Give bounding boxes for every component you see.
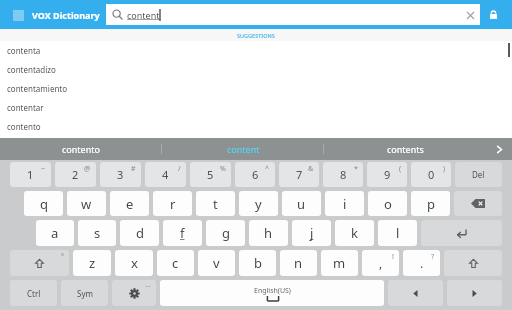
button[interactable]: e: [110, 191, 149, 216]
button[interactable]: d: [120, 220, 159, 246]
button[interactable]: v: [198, 250, 235, 276]
button[interactable]: t: [196, 191, 235, 216]
button[interactable]: contentamiento: [0, 79, 512, 98]
staticText: contentamiento: [7, 83, 68, 94]
button[interactable]: 5: [190, 162, 231, 187]
button[interactable]: .: [403, 250, 440, 276]
button[interactable]: x: [115, 250, 153, 276]
button[interactable]: ···: [112, 280, 156, 306]
button[interactable]: °: [10, 250, 69, 276]
button[interactable]: 4: [145, 162, 186, 187]
button[interactable]: Sym: [61, 280, 108, 306]
staticText: contento: [62, 143, 100, 155]
button[interactable]: b: [239, 250, 276, 276]
button[interactable]: 2: [55, 162, 96, 187]
button[interactable]: n: [280, 250, 317, 276]
button[interactable]: i: [325, 191, 364, 216]
staticText: u: [297, 195, 306, 213]
button[interactable]: Del: [455, 162, 502, 187]
staticText: y: [255, 195, 262, 213]
button[interactable]: s: [78, 220, 116, 246]
staticText: contenta: [7, 45, 41, 56]
button[interactable]: y: [239, 191, 278, 216]
staticText: q: [40, 195, 48, 213]
button[interactable]: z: [73, 250, 111, 276]
button[interactable]: p: [411, 191, 450, 216]
button[interactable]: Ctrl: [10, 280, 57, 306]
button[interactable]: [447, 280, 502, 306]
staticText: ^: [265, 164, 270, 174]
button[interactable]: 7: [279, 162, 319, 187]
button[interactable]: 6: [235, 162, 275, 187]
button[interactable]: g: [206, 220, 245, 246]
staticText: contento: [7, 121, 41, 132]
staticText: ···: [145, 282, 151, 292]
staticText: x: [131, 254, 138, 272]
button[interactable]: Lock: [480, 0, 506, 29]
button[interactable]: contentar: [0, 98, 512, 117]
staticText: @: [84, 164, 91, 174]
button[interactable]: content: [106, 4, 480, 25]
button[interactable]: contento: [0, 138, 162, 160]
button[interactable]: f: [163, 220, 202, 246]
button[interactable]: u: [282, 191, 321, 216]
button[interactable]: q: [24, 191, 63, 216]
staticText: z: [89, 254, 96, 272]
button[interactable]: m: [321, 250, 358, 276]
staticText: 7: [296, 167, 303, 182]
staticText: e: [126, 195, 134, 213]
staticText: l: [396, 224, 400, 242]
staticText: 2: [72, 167, 79, 182]
button[interactable]: [421, 220, 502, 246]
staticText: n: [294, 254, 303, 272]
staticText: c: [172, 254, 179, 272]
staticText: content: [227, 143, 260, 155]
button[interactable]: English(US): [160, 280, 384, 306]
button[interactable]: 9: [367, 162, 407, 187]
button[interactable]: 1: [10, 162, 51, 187]
button[interactable]: a: [36, 220, 74, 246]
staticText: 1: [27, 167, 34, 182]
staticText: w: [81, 195, 92, 213]
button[interactable]: Menu: [6, 3, 30, 27]
button[interactable]: w: [67, 191, 106, 216]
staticText: ?: [431, 252, 435, 262]
button[interactable]: o: [368, 191, 407, 216]
button[interactable]: contents: [324, 138, 486, 160]
staticText: 9: [384, 167, 391, 182]
button[interactable]: j: [292, 220, 331, 246]
staticText: h: [264, 224, 273, 242]
staticText: i: [343, 195, 347, 213]
button[interactable]: 8: [323, 162, 363, 187]
button[interactable]: k: [335, 220, 374, 246]
staticText: t: [213, 195, 218, 213]
button[interactable]: [454, 191, 502, 216]
button[interactable]: Clear: [460, 5, 480, 25]
staticText: p: [427, 195, 435, 213]
staticText: %: [220, 164, 226, 174]
button[interactable]: contenta: [0, 41, 512, 60]
staticText: English(US): [254, 286, 291, 296]
button[interactable]: c: [157, 250, 194, 276]
button[interactable]: 3: [100, 162, 141, 187]
staticText: ,: [379, 255, 383, 271]
staticText: (: [399, 164, 402, 174]
button[interactable]: contento: [0, 117, 512, 136]
staticText: &: [308, 164, 314, 174]
button[interactable]: content: [162, 138, 324, 160]
button[interactable]: 0: [411, 162, 451, 187]
staticText: j: [310, 224, 314, 242]
staticText: r: [170, 195, 176, 213]
staticText: m: [333, 254, 346, 272]
button[interactable]: ,: [362, 250, 399, 276]
button[interactable]: contentadizo: [0, 60, 512, 79]
button[interactable]: r: [153, 191, 192, 216]
staticText: VOX Dictionary: [32, 9, 100, 21]
button[interactable]: [388, 280, 443, 306]
button[interactable]: l: [378, 220, 417, 246]
button[interactable]: h: [249, 220, 288, 246]
staticText: .: [420, 255, 424, 271]
button[interactable]: [444, 250, 502, 276]
staticText: 3: [117, 167, 124, 182]
button[interactable]: More suggestions: [486, 138, 512, 160]
